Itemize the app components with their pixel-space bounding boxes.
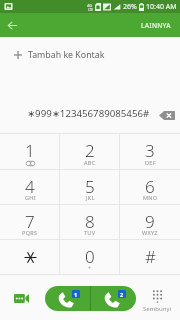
button[interactable]: 2 [60,134,120,169]
staticText: JKL [86,194,95,201]
button[interactable]: Tambah ke Kontak [0,37,180,75]
button[interactable]: 4 [0,170,60,204]
staticText: 2 [120,291,124,298]
button[interactable]: 6 [120,170,180,204]
staticText: 5 [85,175,95,198]
staticText: WXYZ [142,229,158,236]
staticText: ∗999∗123456789085456# [27,107,150,120]
button[interactable]: 5 [60,170,120,204]
staticText: 0 [85,245,95,268]
button[interactable]: Call with SIM 2 [91,286,136,311]
staticText: 9 [145,210,155,233]
button[interactable]: 1 [0,134,60,169]
button[interactable] [0,240,60,274]
button[interactable]: LAINNYA [132,13,180,37]
staticText: 10:40 AM [146,2,177,12]
button[interactable]: # [120,240,180,274]
staticText: + [88,264,92,271]
staticText: 2 [85,139,95,162]
staticText: ABC [84,159,96,166]
button[interactable]: Call with SIM 1 [45,286,90,311]
button[interactable]: Sembunyi [141,288,174,315]
staticText: DEF [145,159,156,166]
staticText: 8 [85,210,95,233]
button[interactable]: 3 [120,134,180,169]
staticText: Tambah ke Kontak [28,49,105,61]
staticText: PQRS [22,229,38,236]
staticText: 4 [25,175,35,198]
staticText: GHI [25,194,36,201]
staticText: 1 [74,291,78,298]
staticText: LAINNYA [141,21,171,30]
staticText: # [145,245,156,268]
staticText: 3 [145,139,155,162]
button[interactable]: Backspace [157,105,177,125]
button[interactable]: 0 [60,240,120,274]
button[interactable]: 7 [0,205,60,239]
button[interactable]: Video call [9,286,33,310]
button[interactable]: 9 [120,205,180,239]
staticText: 1 [25,139,35,162]
button[interactable]: 8 [60,205,120,239]
staticText: TUV [84,229,96,236]
staticText: 26% [123,2,137,12]
staticText: Sembunyi [143,305,172,313]
staticText: 6 [145,175,155,198]
staticText: 4G [87,3,93,8]
staticText: 7 [25,210,35,233]
staticText: LTE [88,8,93,12]
staticText: MNO [143,194,158,201]
button[interactable]: Back [0,13,24,37]
